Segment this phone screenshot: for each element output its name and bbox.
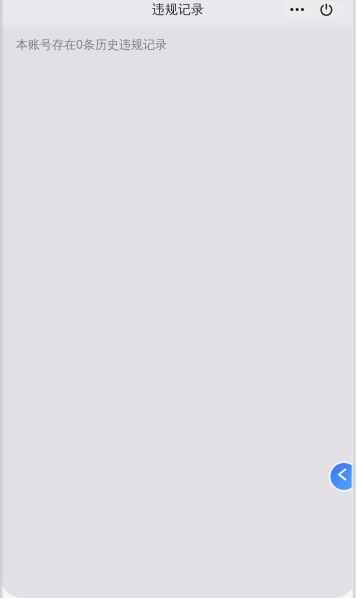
- button[interactable]: Back: [328, 461, 356, 492]
- button[interactable]: More: [281, 0, 313, 18]
- staticText: 本账号存在0条历史违规记录: [16, 36, 167, 52]
- staticText: 违规记录: [152, 1, 204, 17]
- button[interactable]: Close mini program: [314, 0, 344, 18]
